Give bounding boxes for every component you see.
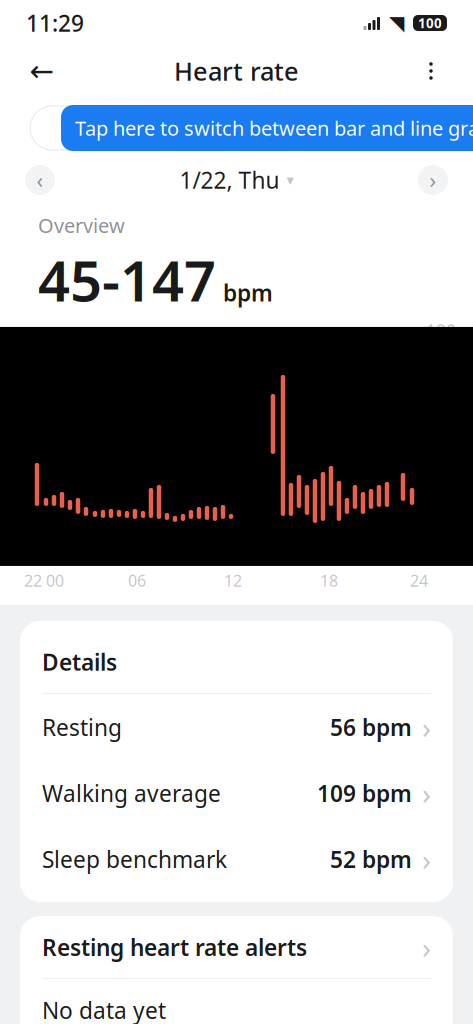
button[interactable]: Walking average xyxy=(20,760,453,826)
staticText: Sleep benchmark xyxy=(42,844,227,874)
staticText: 45-147 xyxy=(38,243,216,317)
staticText: › xyxy=(429,166,436,194)
staticText: Overview xyxy=(38,212,125,239)
staticText: 109 bpm xyxy=(317,778,412,808)
button[interactable]: Switch graph type xyxy=(30,106,102,150)
staticText: bpm xyxy=(223,278,273,308)
staticText: Resting xyxy=(42,712,122,742)
staticText: › xyxy=(422,928,431,967)
staticText: 180 xyxy=(426,319,456,342)
button[interactable]: Back xyxy=(18,47,66,95)
button[interactable]: Resting xyxy=(20,694,453,760)
staticText: › xyxy=(422,774,431,813)
staticText: 1/22, Thu xyxy=(179,165,279,195)
staticText: 18 xyxy=(320,570,338,591)
staticText: 100 xyxy=(418,14,442,32)
staticText: 12 xyxy=(224,570,242,591)
staticText: › xyxy=(422,840,431,879)
staticText: ← xyxy=(29,54,54,88)
staticText: Heart rate xyxy=(174,54,299,88)
staticText: ▾ xyxy=(286,172,293,188)
button[interactable]: Resting heart rate alerts xyxy=(20,916,453,978)
staticText: 06 xyxy=(128,570,146,591)
button[interactable]: More options xyxy=(407,47,455,95)
staticText: Resting heart rate alerts xyxy=(42,932,307,962)
button[interactable]: Sleep benchmark xyxy=(20,826,453,892)
staticText: 24 xyxy=(410,570,428,591)
staticText: 56 bpm xyxy=(330,712,412,742)
staticText: Tap here to switch between bar and line … xyxy=(75,115,473,141)
button[interactable]: Next day xyxy=(413,160,453,200)
staticText: ◥ xyxy=(389,12,404,34)
staticText: 52 bpm xyxy=(330,844,412,874)
button[interactable]: Previous day xyxy=(20,160,60,200)
staticText: 22 00 xyxy=(24,570,64,591)
staticText: 11:29 xyxy=(26,8,84,38)
staticText: › xyxy=(422,708,431,747)
staticText: ▲ xyxy=(433,100,448,123)
staticText: Walking average xyxy=(42,778,221,808)
button[interactable]: 1/22, Thu xyxy=(171,160,301,200)
staticText: ‹ xyxy=(36,166,43,194)
staticText: No data yet xyxy=(42,995,166,1024)
staticText: Details xyxy=(42,647,117,677)
